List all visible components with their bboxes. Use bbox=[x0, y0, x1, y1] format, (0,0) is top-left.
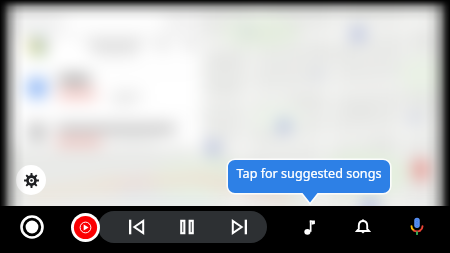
button[interactable]: Previous bbox=[127, 217, 147, 237]
button[interactable]: Notifications bbox=[353, 217, 373, 237]
button[interactable]: Assistant bbox=[406, 215, 428, 237]
button[interactable]: Home bbox=[20, 215, 44, 239]
button[interactable]: Tap for suggested songs bbox=[226, 158, 392, 206]
button[interactable]: Pause bbox=[177, 217, 197, 237]
button[interactable]: Settings bbox=[16, 165, 46, 195]
staticText: Tap for suggested songs bbox=[228, 165, 390, 182]
button[interactable]: YouTube Music bbox=[71, 213, 100, 242]
button[interactable]: Next bbox=[229, 217, 249, 237]
button[interactable]: Music bbox=[300, 217, 320, 237]
